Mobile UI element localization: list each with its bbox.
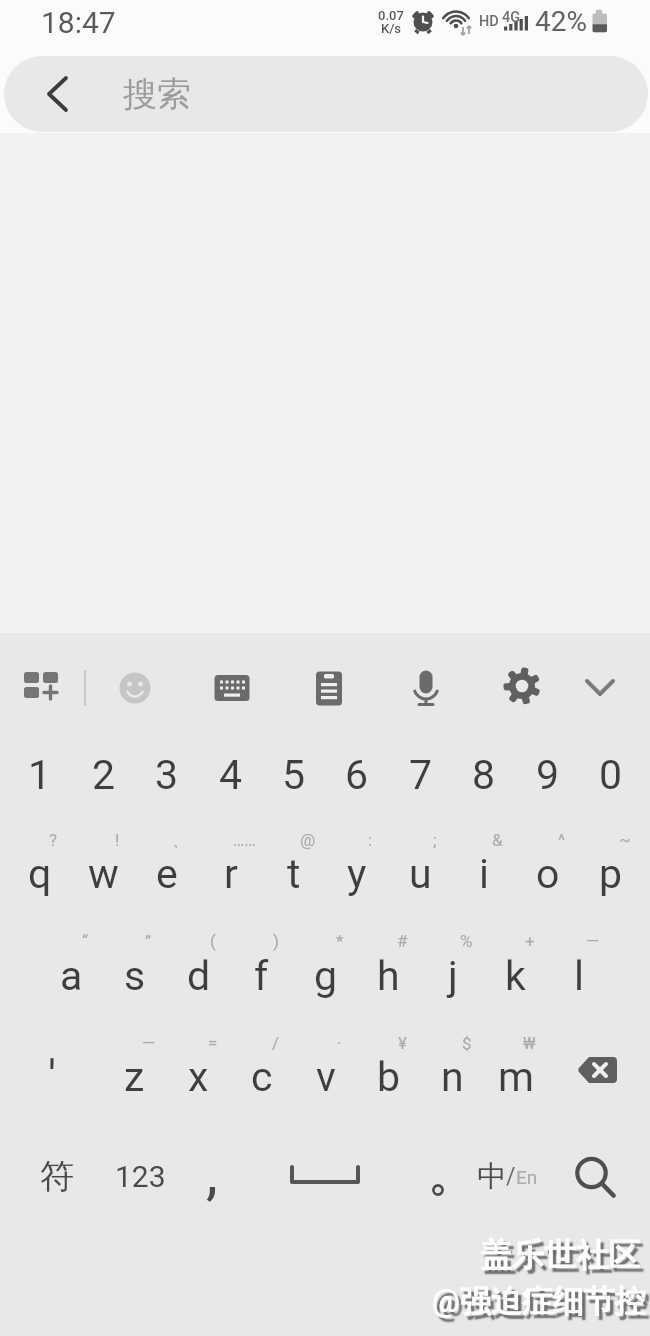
button[interactable]: 123 [100,1134,180,1218]
button[interactable] [555,1134,635,1218]
staticText: 4 [219,751,243,799]
staticText: / [506,1163,516,1190]
staticText: ~ [619,830,631,850]
staticText: @ [300,830,316,850]
staticText: + [525,931,535,951]
button[interactable]: 中 [470,1134,545,1218]
staticText: m [498,1053,534,1101]
button[interactable]: r [199,838,262,910]
staticText: l [574,952,584,1000]
button[interactable]: q [8,838,71,910]
button[interactable]: 6 [325,726,388,824]
staticText: 7 [409,751,433,799]
button[interactable] [12,658,72,718]
button[interactable]: w [72,838,135,910]
staticText: — [586,931,600,951]
staticText: y [347,850,367,898]
button[interactable]: 7 [389,726,452,824]
staticText: # [397,931,408,951]
button[interactable]: 3 [135,726,198,824]
button[interactable]: n [421,1041,484,1113]
button[interactable]: 2 [72,726,135,824]
button[interactable] [212,668,252,708]
button[interactable] [408,1134,468,1218]
staticText: , [206,1137,218,1207]
staticText: 5 [282,751,306,799]
button[interactable]: m [484,1041,547,1113]
staticText: 4G [502,9,521,26]
button[interactable]: l [547,940,610,1012]
button[interactable] [579,668,619,708]
staticText: b [377,1053,401,1101]
staticText: @强迫症细节控 [432,1282,646,1321]
button[interactable]: 5 [262,726,325,824]
button[interactable]: 0 [579,726,642,824]
staticText: q [28,850,52,898]
button[interactable]: s [103,940,166,1012]
staticText: c [251,1053,273,1101]
staticText: 8 [472,751,496,799]
button[interactable]: g [294,940,357,1012]
button[interactable]: u [389,838,452,910]
button[interactable]: 8 [452,726,515,824]
button[interactable]: 1 [8,726,71,824]
staticText: r [224,850,238,898]
button[interactable]: v [294,1041,357,1113]
staticText: 123 [115,1159,166,1194]
staticText: ₩ [523,1033,536,1053]
button[interactable]: b [357,1041,420,1113]
button[interactable]: o [516,838,579,910]
button[interactable]: 9 [516,726,579,824]
button[interactable]: x [167,1041,230,1113]
staticText: …… [233,830,256,850]
button[interactable] [406,668,446,708]
button[interactable]: ' [7,1037,97,1117]
button[interactable]: p [579,838,642,910]
button[interactable] [309,668,349,708]
button[interactable] [115,668,155,708]
button[interactable]: t [262,838,325,910]
staticText: 2 [92,751,116,799]
staticText: ' [48,1050,57,1104]
staticText: 18:47 [41,5,116,40]
button[interactable]: a [40,940,103,1012]
staticText: i [479,850,489,898]
button[interactable]: d [167,940,230,1012]
staticText: ^ [558,830,566,850]
staticText: HD [479,13,499,30]
button[interactable]: h [357,940,420,1012]
staticText: — [142,1033,156,1053]
staticText: ) [273,931,279,951]
staticText: w [88,850,119,898]
staticText: 42% [535,5,587,38]
staticText: d [187,952,211,1000]
button[interactable] [502,665,542,705]
button[interactable]: k [484,940,547,1012]
staticText: h [377,952,400,1000]
staticText: v [316,1053,336,1101]
staticText: k [505,952,526,1000]
staticText: K/s [381,21,402,36]
staticText: ¥ [398,1033,407,1053]
button[interactable]: , [177,1122,247,1222]
button[interactable]: 4 [199,726,262,824]
button[interactable]: z [103,1041,166,1113]
button[interactable]: y [325,838,388,910]
staticText: e [156,850,178,898]
staticText: 盖乐世社区 [480,1235,640,1275]
button[interactable] [552,1038,647,1116]
button[interactable]: j [421,940,484,1012]
button[interactable]: 符 [12,1134,102,1218]
button[interactable]: e [135,838,198,910]
staticText: 符 [40,1155,74,1198]
button[interactable]: i [452,838,515,910]
staticText: / [272,1033,280,1053]
staticText: 9 [536,751,560,799]
button[interactable] [270,1134,380,1218]
button[interactable]: c [230,1041,293,1113]
staticText: ( [210,931,216,951]
button[interactable]: f [230,940,293,1012]
staticText: En [516,1166,538,1188]
staticText: ? [49,830,58,850]
button[interactable]: 搜索 [4,56,648,132]
